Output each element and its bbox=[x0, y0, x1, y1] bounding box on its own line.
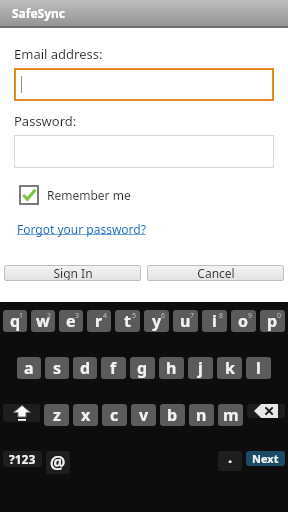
staticText: 0 bbox=[277, 311, 282, 321]
staticText: 3 bbox=[75, 311, 80, 321]
staticText: v bbox=[139, 404, 149, 426]
staticText: e bbox=[66, 310, 76, 332]
staticText: Password: bbox=[14, 112, 77, 130]
staticText: 2 bbox=[47, 311, 52, 321]
staticText: i bbox=[212, 310, 217, 332]
staticText: Sign In bbox=[53, 265, 93, 281]
staticText: Forgot your password? bbox=[17, 221, 146, 237]
button[interactable]: l bbox=[246, 357, 271, 379]
staticText: d bbox=[80, 357, 91, 379]
staticText: ?123 bbox=[9, 451, 36, 467]
staticText: s bbox=[53, 357, 62, 379]
button[interactable]: p bbox=[260, 310, 285, 332]
button[interactable]: ?123 bbox=[3, 451, 42, 467]
staticText: h bbox=[166, 357, 177, 379]
button[interactable]: Delete bbox=[247, 404, 285, 418]
staticText: f bbox=[110, 357, 117, 379]
staticText: t bbox=[124, 310, 131, 332]
button[interactable]: e bbox=[59, 310, 83, 332]
staticText: m bbox=[223, 404, 239, 426]
button[interactable]: x bbox=[73, 404, 98, 426]
button[interactable]: Remember me bbox=[19, 185, 131, 205]
staticText: y bbox=[152, 310, 162, 332]
button[interactable]: r bbox=[87, 310, 111, 332]
staticText: g bbox=[137, 357, 148, 379]
button[interactable]: a bbox=[17, 357, 41, 379]
staticText: 1 bbox=[19, 311, 24, 321]
staticText: q bbox=[10, 310, 21, 332]
button[interactable]: Next bbox=[246, 451, 285, 466]
button[interactable]: v bbox=[131, 404, 156, 426]
staticText: 9 bbox=[248, 311, 253, 321]
staticText: b bbox=[167, 404, 178, 426]
button[interactable]: d bbox=[73, 357, 97, 379]
button[interactable]: j bbox=[188, 357, 213, 379]
button[interactable]: · bbox=[218, 451, 242, 471]
staticText: SafeSync bbox=[12, 5, 66, 21]
staticText: l bbox=[256, 357, 261, 379]
staticText: a bbox=[24, 357, 34, 379]
button[interactable]: Forgot your password? bbox=[17, 221, 146, 237]
button[interactable]: z bbox=[44, 404, 69, 426]
button[interactable]: o bbox=[231, 310, 256, 332]
button[interactable]: k bbox=[217, 357, 242, 379]
button[interactable]: c bbox=[102, 404, 127, 426]
staticText: c bbox=[110, 404, 119, 426]
staticText: Cancel bbox=[197, 265, 235, 281]
staticText: x bbox=[81, 404, 91, 426]
button[interactable]: f bbox=[101, 357, 126, 379]
button[interactable]: Shift bbox=[3, 404, 40, 422]
button[interactable]: y bbox=[144, 310, 169, 332]
staticText: 7 bbox=[190, 311, 195, 321]
button[interactable]: Sign In bbox=[4, 265, 141, 281]
button[interactable]: @ bbox=[46, 451, 70, 474]
staticText: Next bbox=[252, 451, 279, 466]
button[interactable]: u bbox=[173, 310, 198, 332]
staticText: · bbox=[228, 451, 233, 471]
button[interactable]: q bbox=[3, 310, 27, 332]
button[interactable]: m bbox=[218, 404, 243, 426]
button[interactable]: b bbox=[160, 404, 185, 426]
button[interactable]: w bbox=[31, 310, 55, 332]
staticText: k bbox=[225, 357, 235, 379]
button[interactable]: g bbox=[130, 357, 155, 379]
button[interactable]: s bbox=[45, 357, 69, 379]
staticText: p bbox=[267, 310, 278, 332]
staticText: u bbox=[180, 310, 191, 332]
staticText: z bbox=[53, 404, 61, 426]
button[interactable]: n bbox=[189, 404, 214, 426]
staticText: @ bbox=[50, 451, 66, 474]
staticText: 5 bbox=[132, 311, 137, 321]
staticText: n bbox=[196, 404, 207, 426]
staticText: Email address: bbox=[14, 45, 103, 63]
button[interactable]: i bbox=[202, 310, 227, 332]
staticText: w bbox=[36, 310, 50, 332]
button[interactable]: h bbox=[159, 357, 184, 379]
staticText: 8 bbox=[219, 311, 224, 321]
staticText: 6 bbox=[161, 311, 166, 321]
button[interactable] bbox=[14, 135, 274, 168]
button[interactable] bbox=[14, 68, 274, 101]
button[interactable]: t bbox=[115, 310, 140, 332]
staticText: o bbox=[238, 310, 249, 332]
staticText: j bbox=[198, 357, 203, 379]
staticText: Remember me bbox=[47, 187, 131, 203]
button[interactable]: Cancel bbox=[147, 265, 284, 281]
staticText: 4 bbox=[103, 311, 108, 321]
staticText: r bbox=[95, 310, 103, 332]
